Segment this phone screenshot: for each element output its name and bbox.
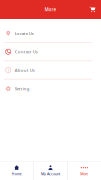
button[interactable]: Contact Us xyxy=(0,43,101,61)
button[interactable]: Locate Us xyxy=(0,25,101,43)
staticText: More xyxy=(80,171,88,176)
button[interactable]: About Us xyxy=(0,61,101,79)
staticText: About Us xyxy=(15,67,35,73)
button[interactable]: Shopping cart xyxy=(90,7,95,12)
staticText: Locate Us xyxy=(15,30,34,36)
staticText: Contact Us xyxy=(15,49,38,55)
staticText: My Account xyxy=(41,171,60,176)
button[interactable]: More xyxy=(68,162,101,180)
button[interactable]: My Account xyxy=(34,162,67,180)
button[interactable]: Home xyxy=(0,162,33,180)
button[interactable]: Setting xyxy=(0,79,101,98)
staticText: Setting xyxy=(15,86,30,91)
staticText: More xyxy=(44,6,56,13)
staticText: Home xyxy=(12,171,22,176)
